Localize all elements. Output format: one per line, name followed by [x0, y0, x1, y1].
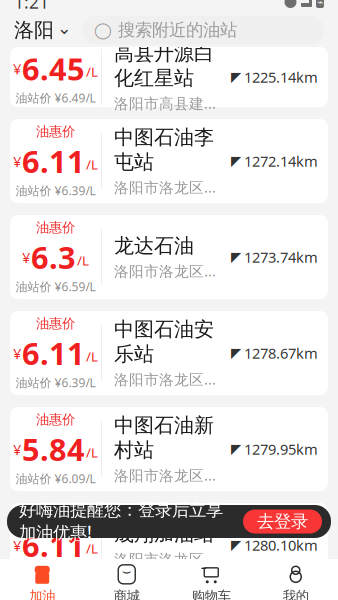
button[interactable]: 我的 [253, 559, 338, 600]
staticText: ⌣ [122, 564, 132, 578]
staticText: 油惠价 [36, 411, 75, 428]
staticText: 1278.67km [244, 343, 318, 363]
button[interactable]: 加油 [0, 559, 84, 600]
button[interactable]: 油惠价 [10, 119, 328, 203]
staticText: 我的 [283, 588, 309, 600]
button[interactable]: 油惠价 [10, 215, 328, 299]
staticText: 1272.14km [244, 151, 318, 171]
staticText: ¥ [13, 59, 21, 78]
staticText: 5.84 [22, 429, 85, 470]
staticText: 1225.14km [244, 67, 318, 87]
staticText: ¥ [13, 535, 21, 555]
staticText: 加油 [29, 588, 55, 600]
button[interactable]: 油惠价 [10, 503, 328, 587]
button[interactable]: ¥ [10, 47, 328, 107]
staticText: 6.11 [22, 141, 85, 182]
button[interactable]: 油惠价 [10, 407, 328, 491]
staticText: 洛阳 [14, 18, 54, 42]
staticText: 油惠价 [36, 219, 75, 236]
button[interactable]: 油惠价 [10, 311, 328, 395]
button[interactable]: 去登录 [243, 509, 322, 533]
staticText: 油惠价 [36, 123, 75, 140]
staticText: 洛阳市洛龙区滨河南路与豫安街… [114, 465, 221, 485]
staticText: 1:21 [14, 0, 49, 13]
staticText: 油站价 ¥6.39/L [15, 183, 95, 198]
button[interactable]: ⌣ [84, 559, 169, 600]
staticText: ⌄ [57, 18, 72, 38]
button[interactable]: ◯ [82, 15, 324, 44]
staticText: 洛阳市洛龙区伊洛路与龙门大道… [114, 261, 221, 281]
staticText: 洛阳市洛龙区王城大道 [114, 177, 221, 197]
staticText: ¥ [13, 151, 21, 171]
staticText: 油站价 ¥6.39/L [15, 375, 95, 390]
staticText: /L [86, 63, 98, 80]
staticText: 6.45 [22, 48, 85, 89]
button[interactable]: 购物车 [169, 559, 253, 600]
staticText: 中图石油新村站 [114, 413, 214, 462]
staticText: 油站价 ¥6.09/L [15, 471, 95, 486]
staticText: 商城 [114, 588, 140, 600]
staticText: 洛阳市洛龙区龙和路129号 [114, 549, 221, 569]
staticText: 晟翔加油站 [114, 521, 214, 546]
staticText: ◤ [231, 537, 241, 552]
staticText: /L [86, 155, 98, 173]
staticText: 油站价 ¥6.49/L [15, 90, 95, 106]
staticText: 1279.95km [244, 439, 318, 459]
staticText: 6.11 [22, 525, 85, 566]
staticText: /L [77, 251, 89, 269]
staticText: 油惠价 [36, 507, 75, 524]
staticText: ◤ [231, 441, 241, 456]
staticText: 中图石油安乐站 [114, 317, 214, 366]
staticText: ◤ [231, 69, 241, 84]
staticText: 去登录 [257, 511, 308, 532]
staticText: 洛阳市洛龙区龙门大道327号附近 [114, 369, 221, 389]
staticText: /L [86, 347, 98, 365]
staticText: 龙达石油 [114, 233, 194, 258]
staticText: 油惠价 [36, 315, 75, 332]
staticText: 购物车 [192, 588, 231, 600]
staticText: 6.11 [22, 333, 85, 374]
staticText: ¥ [13, 439, 21, 459]
staticText: ◤ [231, 345, 241, 360]
staticText: 好嗨油提醒您：登录后立享加油优惠! [19, 499, 223, 544]
staticText: 高县廾源白化红星站 [114, 41, 214, 90]
staticText: /L [86, 539, 98, 557]
staticText: ⌁ [317, 0, 323, 8]
staticText: 中图石油李屯站 [114, 125, 214, 174]
staticText: 6.3 [31, 237, 76, 278]
button[interactable]: 洛阳 [14, 18, 72, 42]
staticText: 1280.10km [244, 535, 318, 555]
staticText: ◤ [231, 153, 241, 168]
staticText: 1273.74km [244, 247, 318, 267]
staticText: ◯ [94, 21, 112, 39]
staticText: 洛阳市高县建设西路安泰小区二期 [114, 93, 221, 113]
staticText: /L [86, 443, 98, 461]
staticText: 油站价 ¥6.39/L [15, 567, 95, 582]
staticText: ¥ [22, 247, 30, 267]
staticText: ¥ [13, 343, 21, 363]
staticText: 搜索附近的油站 [118, 19, 237, 41]
staticText: 油站价 ¥6.59/L [15, 279, 95, 294]
staticText: ◤ [231, 249, 241, 264]
